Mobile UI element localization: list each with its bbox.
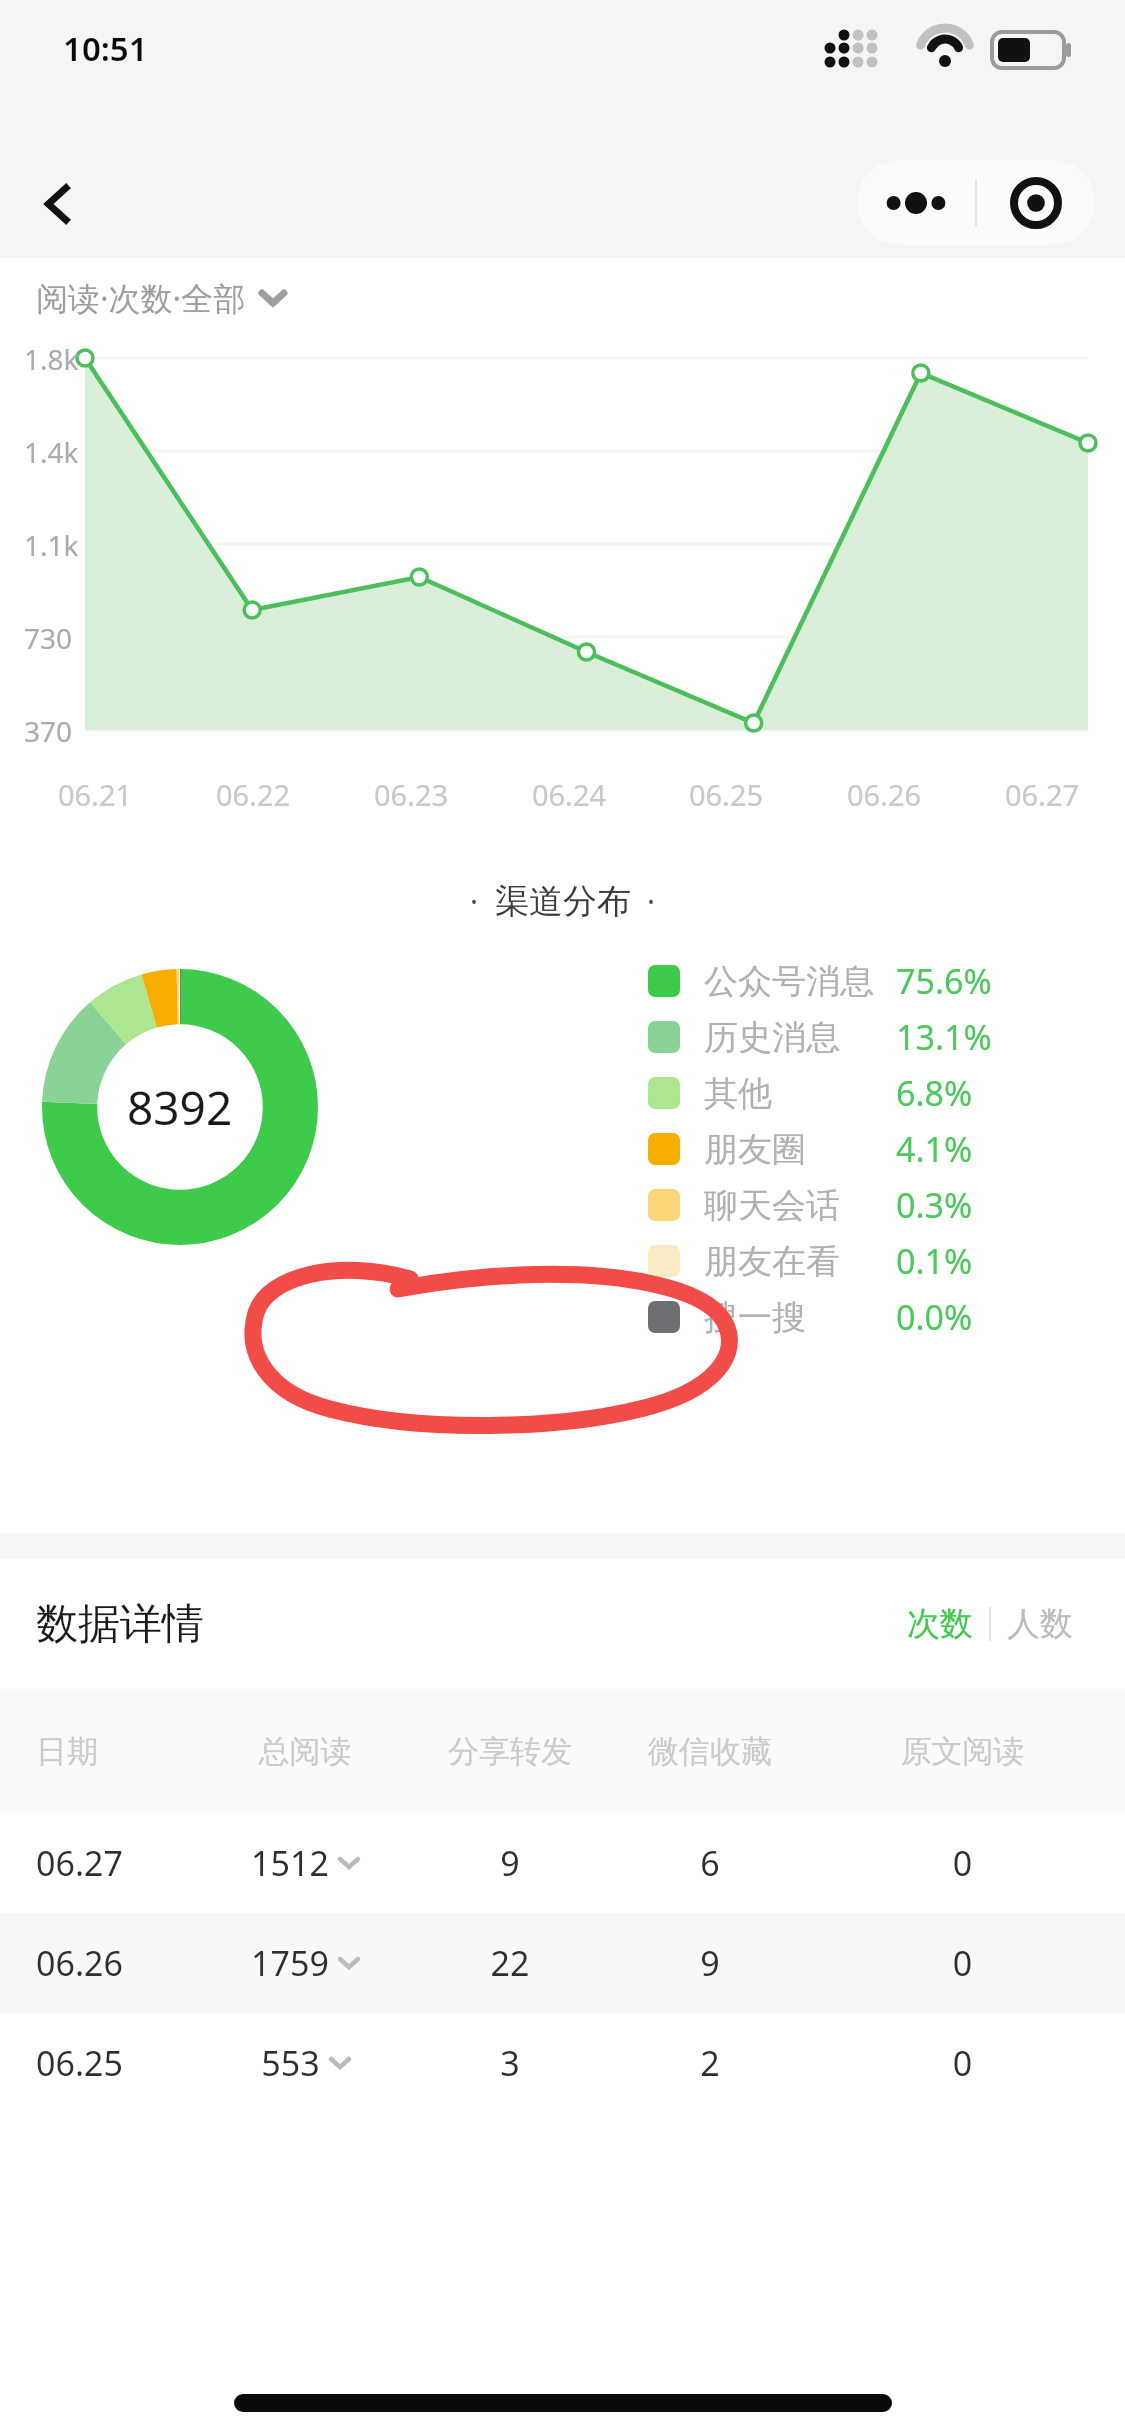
button[interactable]: More — [857, 160, 975, 245]
staticText: 06.22 — [188, 775, 318, 814]
staticText: 553 — [261, 2040, 320, 2086]
staticText: 9 — [410, 1840, 610, 1886]
staticText: 06.26 — [819, 775, 949, 814]
staticText: 06.25 — [36, 2040, 200, 2086]
button[interactable]: Close — [977, 160, 1095, 245]
staticText: 日期 — [36, 1732, 200, 1771]
staticText: 0.0% — [896, 1294, 1026, 1340]
staticText: 1.8k — [24, 340, 79, 378]
staticText: · — [470, 881, 479, 922]
staticText: 1.4k — [24, 433, 79, 471]
staticText: 9 — [610, 1940, 810, 1986]
staticText: 13.1% — [896, 1014, 1026, 1060]
button[interactable]: 朋友圈 — [648, 1121, 1026, 1177]
button[interactable]: 公众号消息 — [648, 953, 1026, 1009]
staticText: 06.27 — [36, 1840, 200, 1886]
button[interactable]: 06.25 — [0, 2013, 1125, 2113]
staticText: 人数 — [1007, 1603, 1073, 1645]
staticText: 75.6% — [896, 958, 1026, 1004]
button[interactable]: 次数 — [891, 1595, 989, 1653]
staticText: 搜一搜 — [704, 1296, 896, 1339]
button[interactable]: 阅读·次数·全部 — [36, 276, 286, 320]
staticText: 0 — [810, 1940, 1115, 1986]
staticText: 4.1% — [896, 1126, 1026, 1172]
staticText: 0 — [810, 1840, 1115, 1886]
staticText: 06.25 — [661, 775, 791, 814]
staticText: 1759 — [251, 1940, 329, 1986]
button[interactable]: 其他 — [648, 1065, 1026, 1121]
staticText: 总阅读 — [200, 1732, 410, 1771]
staticText: 分享转发 — [410, 1732, 610, 1771]
staticText: 0.1% — [896, 1238, 1026, 1284]
staticText: 06.27 — [977, 775, 1107, 814]
staticText: 06.21 — [30, 775, 160, 814]
staticText: 渠道分布 — [495, 880, 631, 923]
staticText: 3 — [410, 2040, 610, 2086]
staticText: 370 — [24, 712, 73, 750]
button[interactable]: 聊天会话 — [648, 1177, 1026, 1233]
staticText: 朋友在看 — [704, 1240, 896, 1283]
staticText: 历史消息 — [704, 1016, 896, 1059]
staticText: 1512 — [251, 1840, 329, 1886]
staticText: 其他 — [704, 1072, 896, 1115]
staticText: 数据详情 — [36, 1598, 204, 1651]
staticText: 公众号消息 — [704, 960, 896, 1003]
button[interactable]: 06.26 — [0, 1913, 1125, 2013]
staticText: 2 — [610, 2040, 810, 2086]
staticText: 10:51 — [63, 26, 148, 71]
button[interactable]: 历史消息 — [648, 1009, 1026, 1065]
staticText: 06.24 — [504, 775, 634, 814]
staticText: 6.8% — [896, 1070, 1026, 1116]
button[interactable]: Back — [14, 160, 102, 248]
staticText: 朋友圈 — [704, 1128, 896, 1171]
staticText: · — [647, 881, 656, 922]
staticText: 次数 — [907, 1603, 973, 1645]
staticText: 1.1k — [24, 526, 79, 564]
staticText: 阅读·次数·全部 — [36, 276, 246, 320]
staticText: 730 — [24, 619, 73, 657]
staticText: 06.26 — [36, 1940, 200, 1986]
staticText: 8392 — [127, 1076, 233, 1139]
staticText: 0.3% — [896, 1182, 1026, 1228]
staticText: 微信收藏 — [610, 1732, 810, 1771]
button[interactable]: 06.27 — [0, 1813, 1125, 1913]
staticText: 6 — [610, 1840, 810, 1886]
staticText: 22 — [410, 1940, 610, 1986]
staticText: 06.23 — [346, 775, 476, 814]
staticText: 0 — [810, 2040, 1115, 2086]
staticText: 聊天会话 — [704, 1184, 896, 1227]
button[interactable]: 搜一搜 — [648, 1289, 1026, 1345]
button[interactable]: 人数 — [991, 1595, 1089, 1653]
staticText: 原文阅读 — [810, 1732, 1115, 1771]
button[interactable]: 朋友在看 — [648, 1233, 1026, 1289]
